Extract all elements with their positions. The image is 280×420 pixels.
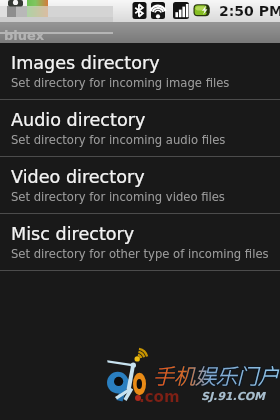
staticText: 手机娱乐门户 <box>153 359 279 389</box>
staticText: SJ.91.COM <box>201 390 266 403</box>
button[interactable]: Images directory <box>0 43 280 99</box>
staticText: 手机娱乐门户 <box>152 359 278 389</box>
staticText: 手机娱乐门户 <box>152 360 278 390</box>
staticText: Misc directory <box>11 224 135 244</box>
staticText: 手机娱乐门户 <box>153 361 279 391</box>
button[interactable]: Audio directory <box>0 100 280 156</box>
staticText: Images directory <box>11 53 160 73</box>
button[interactable]: Video directory <box>0 157 280 213</box>
staticText: Audio directory <box>11 110 146 130</box>
button[interactable]: bluex <box>0 22 280 43</box>
staticText: 2:50 PM <box>219 3 280 19</box>
staticText: .com <box>139 388 180 405</box>
staticText: Set directory for other type of incoming… <box>11 247 269 261</box>
staticText: 手机娱乐门户 <box>153 360 279 390</box>
staticText: Set directory for incoming image files <box>11 76 230 90</box>
staticText: Video directory <box>11 167 145 187</box>
staticText: Set directory for incoming audio files <box>11 133 226 147</box>
button[interactable]: Misc directory <box>0 214 280 270</box>
staticText: 手机娱乐门户 <box>154 360 280 390</box>
staticText: bluex <box>4 28 45 43</box>
staticText: Set directory for incoming video files <box>11 190 225 204</box>
staticText: 手机娱乐门户 <box>154 361 280 391</box>
